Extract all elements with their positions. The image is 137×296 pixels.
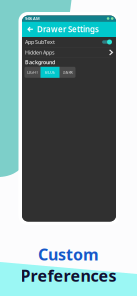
staticText: DARK: [62, 70, 72, 75]
button[interactable]: DARK: [59, 67, 75, 78]
staticText: Custom: [38, 244, 99, 265]
button[interactable]: App SubText: [22, 37, 116, 47]
staticText: Background: [25, 59, 55, 66]
staticText: BLUE: [45, 70, 55, 75]
staticText: Preferences: [20, 265, 116, 286]
staticText: Hidden Apps: [25, 49, 55, 56]
staticText: LIGHT: [27, 70, 38, 75]
staticText: 9:06 AM: [25, 16, 40, 21]
staticText: App SubText: [25, 38, 55, 46]
button[interactable]: Back: [25, 24, 36, 35]
button[interactable]: BLUE: [40, 67, 59, 78]
staticText: Drawer Settings: [37, 24, 99, 34]
button[interactable]: LIGHT: [24, 67, 40, 78]
button[interactable]: Hidden Apps: [22, 47, 116, 57]
